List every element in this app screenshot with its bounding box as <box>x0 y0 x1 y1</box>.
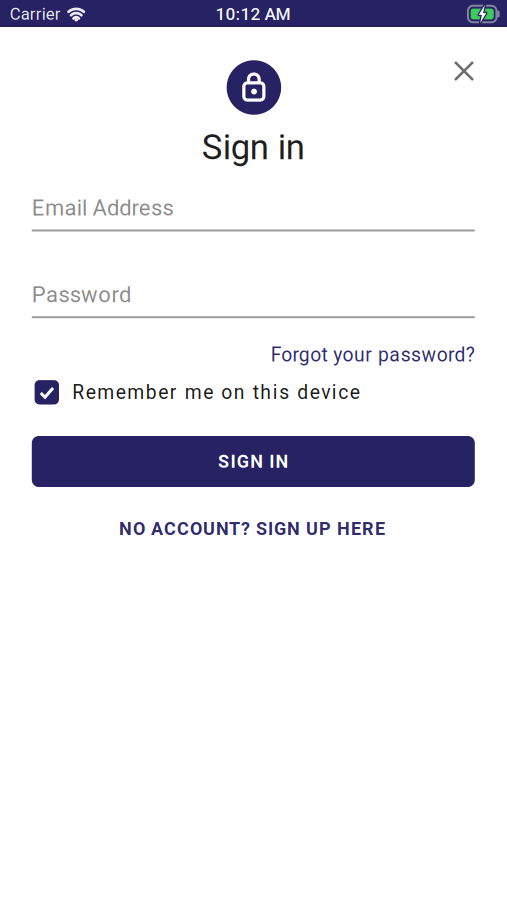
button[interactable]: Forgot your password? <box>271 343 475 366</box>
staticText: Email Address <box>32 195 173 221</box>
button[interactable]: S <box>32 436 475 487</box>
staticText: Forgot your password? <box>271 343 475 366</box>
staticText: NO ACCOUNT? SIGN UP HERE <box>119 518 385 539</box>
staticText: I <box>269 451 274 472</box>
staticText: Remember me on this device <box>72 381 360 404</box>
button[interactable]: Email Address <box>32 192 475 236</box>
button[interactable]: Remember me on this device <box>32 380 475 404</box>
staticText: S <box>218 451 229 472</box>
button[interactable]: Close <box>447 54 481 88</box>
staticText: Sign in <box>202 127 305 168</box>
staticText: N <box>250 451 263 472</box>
button[interactable]: NO ACCOUNT? SIGN UP HERE <box>119 518 385 539</box>
staticText: Password <box>32 282 131 308</box>
staticText: Carrier <box>10 4 61 24</box>
staticText: G <box>237 451 249 472</box>
staticText: 10:12 AM <box>215 4 290 24</box>
staticText: I <box>230 451 235 472</box>
button[interactable]: Password <box>32 279 475 323</box>
staticText: N <box>276 451 289 472</box>
